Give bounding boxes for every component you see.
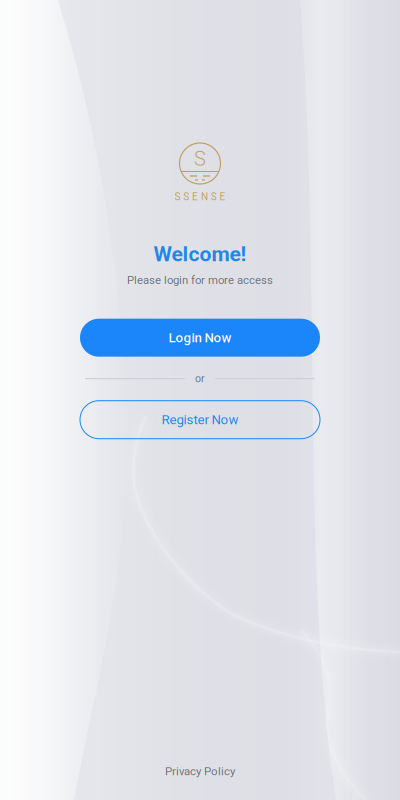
staticText: Login Now	[168, 330, 231, 345]
staticText: Register Now	[161, 412, 238, 427]
button[interactable]: Login Now	[80, 319, 320, 357]
staticText: Welcome!	[153, 242, 246, 266]
staticText: S	[194, 147, 206, 171]
button[interactable]: Register Now	[80, 401, 320, 439]
staticText: S S E N S E	[174, 191, 225, 203]
button[interactable]: Privacy Policy	[165, 765, 235, 778]
staticText: or	[195, 372, 205, 385]
staticText: Privacy Policy	[165, 765, 235, 778]
staticText: Please login for more access	[127, 273, 273, 287]
